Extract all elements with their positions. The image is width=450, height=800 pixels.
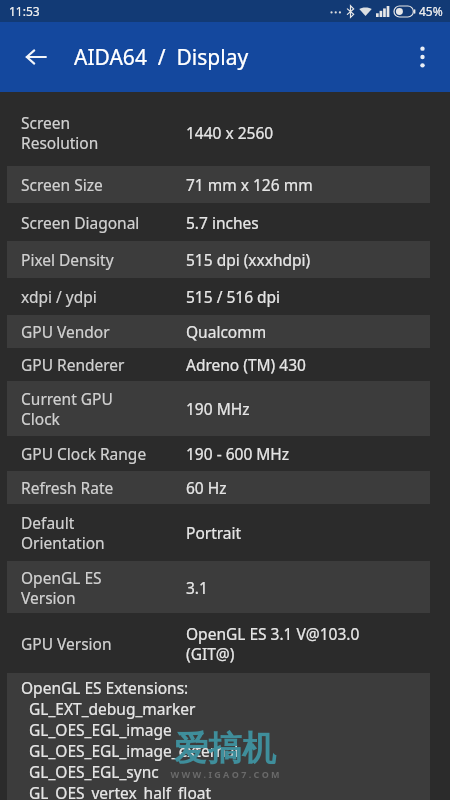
staticText: GL_OES_EGL_sync [21,761,159,782]
staticText: 3.1 [186,577,208,598]
button[interactable]: Pixel Density [0,241,450,278]
button[interactable]: More options [400,35,444,79]
button[interactable]: Screen Diagonal [0,203,450,241]
staticText: GPU Version [21,633,112,654]
staticText: 5.7 inches [186,212,259,233]
staticText: 1440 x 2560 [186,122,274,143]
staticText: OpenGL ES Version [21,567,102,608]
button[interactable]: Screen Resolution [0,98,450,166]
staticText: xdpi / ydpi [21,286,97,307]
staticText: 11:53 [9,3,40,19]
staticText: Screen Resolution [21,112,99,153]
button[interactable]: xdpi / ydpi [0,278,450,315]
staticText: GL_OES_EGL_image [21,719,172,740]
staticText: 515 dpi (xxxhdpi) [186,249,311,270]
staticText: 60 Hz [186,477,227,498]
button[interactable]: Current GPU Clock [0,381,450,436]
staticText: 190 MHz [186,398,250,419]
staticText: Portrait [186,522,242,543]
staticText: 爱搞机 [174,727,276,770]
staticText: 71 mm x 126 mm [186,174,313,195]
button[interactable]: Default Orientation [0,504,450,561]
staticText: 45% [419,3,443,19]
staticText: OpenGL ES Extensions: [21,677,189,698]
staticText: Pixel Density [21,249,114,270]
staticText: Adreno (TM) 430 [186,354,306,375]
staticText: Screen Size [21,174,103,195]
staticText: GPU Vendor [21,321,110,342]
button[interactable]: OpenGL ES Extensions: [0,673,450,800]
staticText: Current GPU Clock [21,388,113,429]
button[interactable]: OpenGL ES Version [0,561,450,613]
staticText: Refresh Rate [21,477,114,498]
staticText: 190 - 600 MHz [186,443,290,464]
button[interactable]: Refresh Rate [0,471,450,504]
button[interactable]: Screen Size [0,166,450,203]
staticText: GPU Renderer [21,354,125,375]
staticText: OpenGL ES 3.1 V@103.0 (GIT@) [186,623,360,664]
staticText: GL_OES_EGL_image_external [21,740,239,761]
button[interactable]: GPU Vendor [0,315,450,348]
staticText: Qualcomm [186,321,267,342]
button[interactable]: GPU Version [0,613,450,673]
staticText: AIDA64 / Display [74,43,249,72]
button[interactable]: GPU Clock Range [0,436,450,471]
button[interactable]: Back [12,33,60,81]
staticText: GL_EXT_debug_marker [21,698,196,719]
staticText: W W W . I G A O 7 . C O M [170,768,280,780]
staticText: Screen Diagonal [21,212,140,233]
button[interactable]: GPU Renderer [0,348,450,381]
staticText: GL_OES_vertex_half_float [21,782,212,800]
staticText: GPU Clock Range [21,443,147,464]
staticText: 515 / 516 dpi [186,286,281,307]
staticText: Default Orientation [21,512,105,553]
